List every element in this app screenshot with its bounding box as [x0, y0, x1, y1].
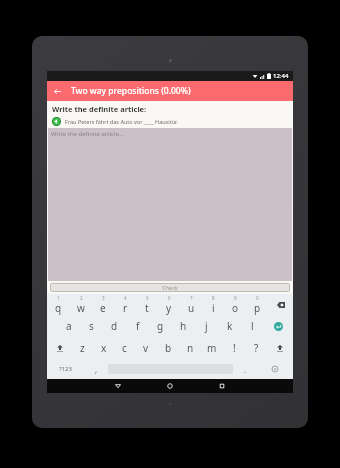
staticText: !: [233, 341, 236, 355]
staticText: Two way prepositions (0.00%): [71, 85, 191, 97]
button[interactable]: !: [223, 337, 245, 359]
staticText: 6: [168, 295, 171, 301]
staticText: a: [66, 319, 72, 333]
button[interactable]: x: [93, 337, 114, 359]
staticText: h: [180, 319, 187, 333]
staticText: u: [188, 301, 195, 315]
staticText: ?: [254, 341, 259, 355]
staticText: m: [207, 341, 217, 355]
staticText: 12:44: [273, 72, 289, 80]
staticText: k: [227, 319, 233, 333]
staticText: z: [80, 341, 85, 355]
button[interactable]: 8: [202, 294, 224, 315]
button[interactable]: 6: [158, 294, 180, 315]
button[interactable]: g: [149, 315, 172, 337]
button[interactable]: j: [195, 315, 218, 337]
staticText: p: [254, 301, 261, 315]
button[interactable]: b: [157, 337, 179, 359]
button[interactable]: Back: [47, 81, 67, 101]
staticText: x: [101, 341, 107, 355]
button[interactable]: Emoji: [257, 359, 293, 379]
button[interactable]: 5: [136, 294, 158, 315]
button[interactable]: Home: [153, 379, 187, 393]
staticText: c: [122, 341, 127, 355]
button[interactable]: .: [233, 359, 257, 379]
button[interactable]: d: [103, 315, 126, 337]
button[interactable]: ?123: [47, 359, 84, 379]
button[interactable]: ?: [245, 337, 267, 359]
button[interactable]: a: [57, 315, 80, 337]
staticText: f: [136, 319, 140, 333]
staticText: ,: [95, 364, 98, 375]
button[interactable]: h: [172, 315, 195, 337]
staticText: Frau Peters fährt das Auto vor ____ Haus…: [65, 118, 178, 125]
button[interactable]: 2: [70, 294, 92, 315]
button[interactable]: k: [218, 315, 241, 337]
staticText: e: [100, 301, 106, 315]
button[interactable]: 4: [114, 294, 136, 315]
button[interactable]: Check: [50, 283, 290, 292]
staticText: o: [232, 301, 239, 315]
staticText: 8: [212, 295, 215, 301]
button[interactable]: f: [126, 315, 149, 337]
button[interactable]: Play audio: [52, 117, 61, 126]
button[interactable]: c: [114, 337, 135, 359]
button[interactable]: Shift: [267, 337, 293, 359]
staticText: y: [166, 301, 172, 315]
button[interactable]: ,: [84, 359, 108, 379]
staticText: Write the definite article...: [51, 130, 124, 138]
button[interactable]: 1: [47, 294, 70, 315]
staticText: 3: [102, 295, 105, 301]
button[interactable]: l: [241, 315, 264, 337]
button[interactable]: Recents: [205, 379, 239, 393]
button[interactable]: 9: [224, 294, 246, 315]
staticText: d: [111, 319, 118, 333]
staticText: .: [244, 364, 247, 375]
button[interactable]: 7: [180, 294, 202, 315]
button[interactable]: s: [80, 315, 103, 337]
button[interactable]: Backspace: [268, 294, 293, 315]
staticText: 2: [80, 295, 83, 301]
staticText: v: [143, 341, 149, 355]
staticText: i: [212, 301, 215, 315]
staticText: n: [187, 341, 194, 355]
staticText: s: [89, 319, 94, 333]
staticText: 4: [124, 295, 127, 301]
button[interactable]: v: [135, 337, 157, 359]
staticText: 0: [256, 295, 259, 301]
staticText: j: [205, 319, 208, 333]
button[interactable]: 0: [246, 294, 268, 315]
staticText: l: [251, 319, 254, 333]
staticText: b: [165, 341, 172, 355]
button[interactable]: 3: [92, 294, 114, 315]
staticText: 9: [234, 295, 237, 301]
staticText: g: [157, 319, 164, 333]
button[interactable]: Back: [101, 379, 135, 393]
staticText: 5: [146, 295, 149, 301]
button[interactable]: n: [179, 337, 201, 359]
staticText: Check: [162, 284, 178, 291]
staticText: q: [55, 301, 62, 315]
staticText: Write the definite article:: [52, 104, 147, 114]
button[interactable]: Enter: [264, 315, 293, 337]
button[interactable]: z: [72, 337, 93, 359]
staticText: w: [77, 301, 85, 315]
staticText: 7: [190, 295, 193, 301]
staticText: r: [123, 301, 128, 315]
button[interactable]: m: [201, 337, 223, 359]
button[interactable]: Shift: [47, 337, 72, 359]
staticText: ?123: [59, 365, 72, 373]
staticText: 1: [57, 295, 60, 301]
staticText: t: [145, 301, 149, 315]
